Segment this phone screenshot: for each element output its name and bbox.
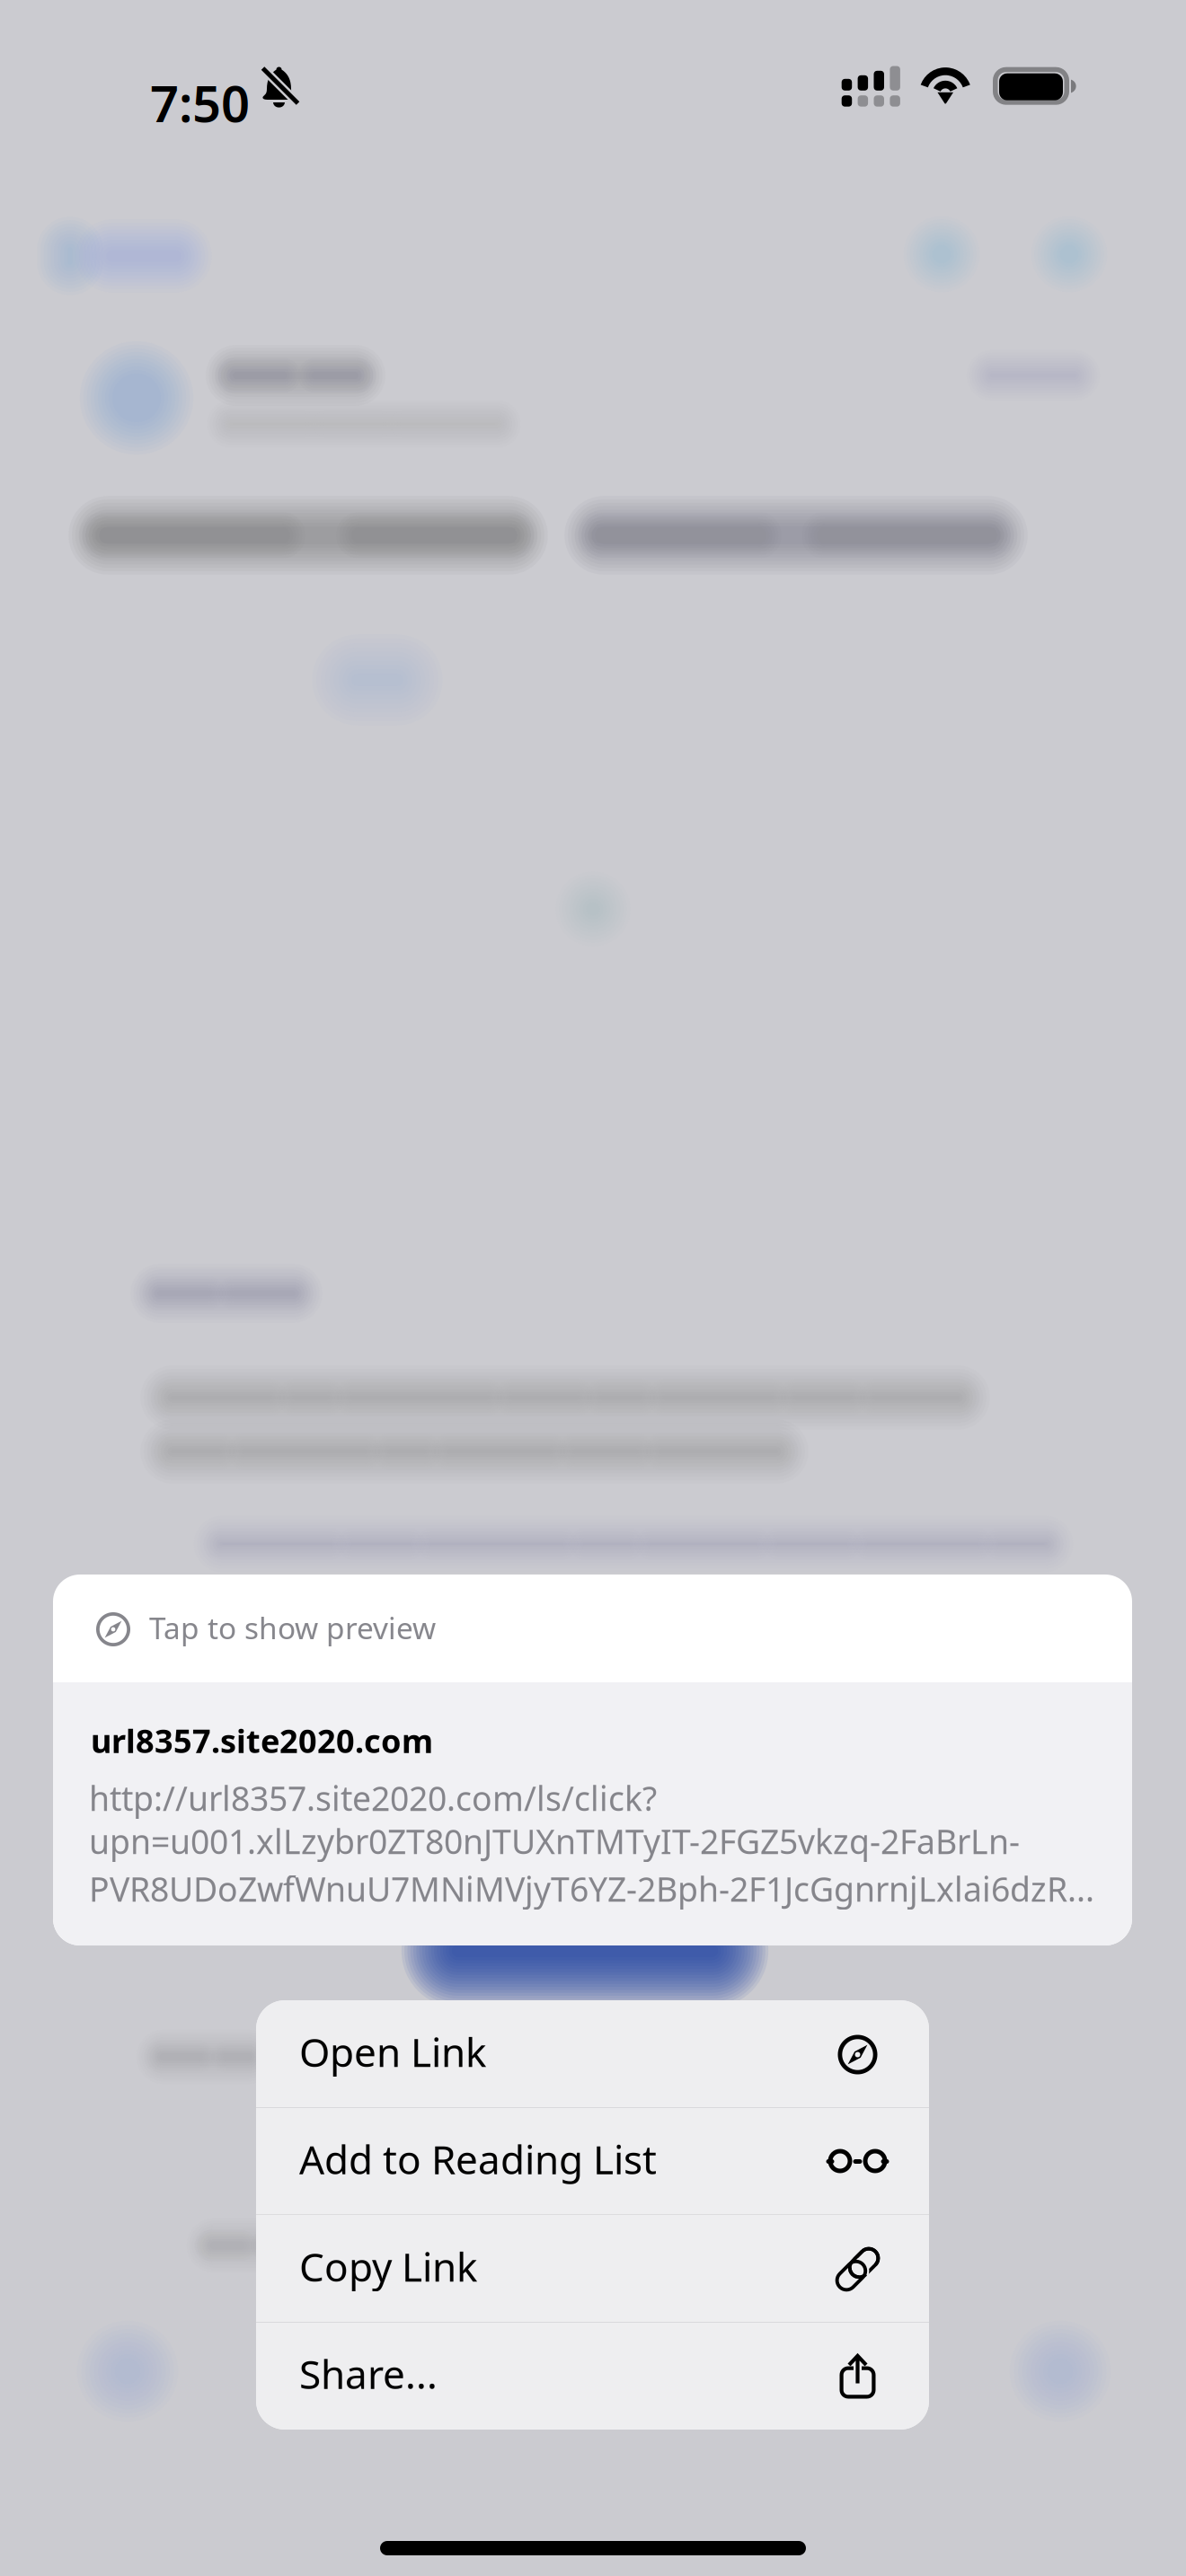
staticText: Copy Link <box>299 2240 477 2293</box>
button[interactable]: Share... <box>256 2322 929 2430</box>
button[interactable]: Add to Reading List <box>256 2108 929 2215</box>
staticText: Tap to show preview <box>149 1608 436 1648</box>
staticText: Share... <box>299 2347 438 2400</box>
staticText: 7:50 <box>150 69 250 136</box>
staticText: upn=u001.xlLzybr0ZT80nJTUXnTMTyIT-2FGZ5v… <box>89 1819 1020 1863</box>
staticText: http://url8357.site2020.com/ls/click? <box>89 1776 657 1820</box>
staticText: Add to Reading List <box>299 2133 657 2185</box>
staticText: Open Link <box>299 2025 486 2078</box>
button[interactable]: Open Link <box>256 2000 929 2108</box>
staticText: PVR8UDoZwfWnuU7MNiMVjyT6YZ-2Bph-2F1JcGgn… <box>89 1866 1094 1911</box>
button[interactable]: Copy Link <box>256 2215 929 2322</box>
button[interactable]: Tap to show preview <box>53 1575 1132 1682</box>
staticText: url8357.site2020.com <box>91 1719 433 1762</box>
